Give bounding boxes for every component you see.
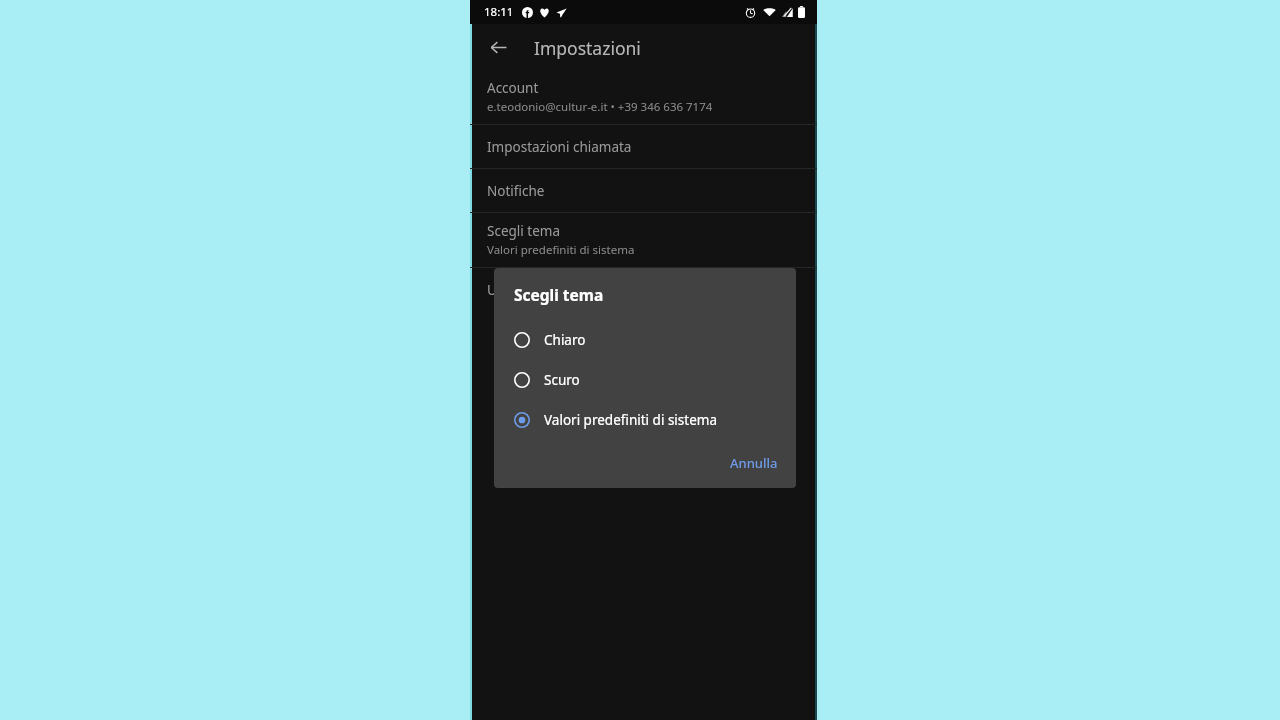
button[interactable]: Scuro	[494, 360, 796, 400]
staticText: Account	[487, 79, 539, 97]
staticText: 18:11	[484, 4, 514, 20]
staticText: Scegli tema	[514, 284, 604, 305]
button[interactable]: Impostazioni chiamata	[470, 125, 817, 168]
staticText: Valori predefiniti di sistema	[544, 411, 717, 429]
button[interactable]: Account	[470, 70, 817, 124]
button[interactable]: Notifiche	[470, 169, 817, 212]
staticText: Scuro	[544, 371, 580, 389]
staticText: Impostazioni	[534, 36, 641, 60]
staticText: Annulla	[730, 454, 778, 472]
staticText: Scegli tema	[487, 222, 560, 240]
button[interactable]: Valori predefiniti di sistema	[494, 400, 796, 440]
staticText: e.teodonio@cultur-e.it • +39 346 636 717…	[487, 99, 713, 115]
staticText: Valori predefiniti di sistema	[487, 242, 635, 258]
button[interactable]: Chiaro	[494, 320, 796, 360]
staticText: Chiaro	[544, 331, 586, 349]
button[interactable]: Annulla	[720, 448, 788, 478]
staticText: Impostazioni chiamata	[487, 138, 632, 156]
button[interactable]: Back	[478, 27, 518, 67]
button[interactable]: Utilizzo dati	[470, 268, 817, 311]
staticText: Notifiche	[487, 182, 545, 200]
button[interactable]: Scegli tema	[470, 213, 817, 267]
staticText: Utilizzo dati	[487, 281, 561, 299]
